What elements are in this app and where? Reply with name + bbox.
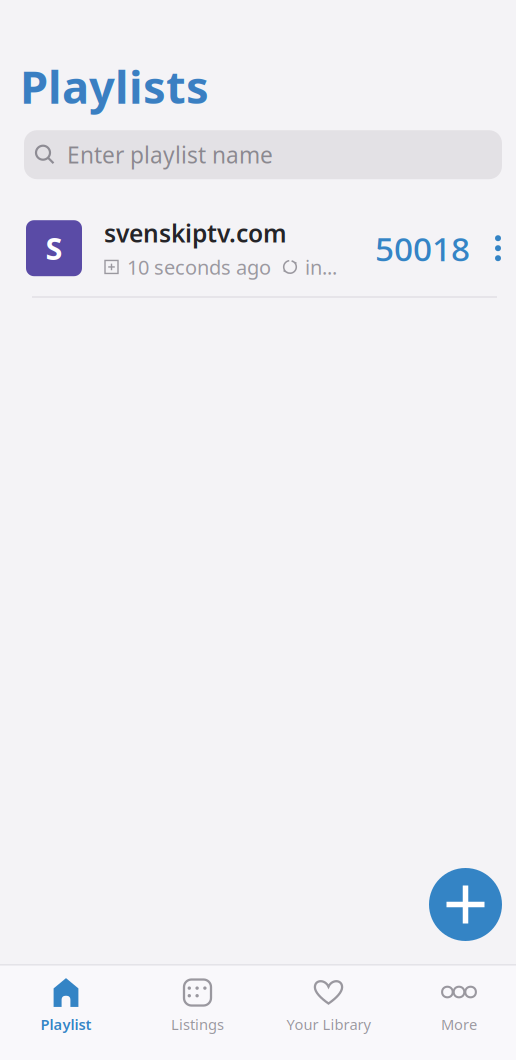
- button[interactable]: More: [387, 965, 516, 1060]
- staticText: in...: [305, 254, 337, 280]
- button[interactable]: Listings: [129, 965, 258, 1060]
- staticText: svenskiptv.com: [104, 216, 287, 250]
- staticText: Listings: [171, 1014, 224, 1034]
- button[interactable]: Enter playlist name: [24, 130, 502, 179]
- staticText: Playlist: [40, 1014, 91, 1034]
- button[interactable]: Add playlist: [429, 868, 502, 941]
- staticText: S: [45, 227, 62, 269]
- staticText: More: [441, 1014, 477, 1034]
- button[interactable]: More options: [470, 200, 516, 296]
- staticText: 10 seconds ago: [127, 254, 271, 280]
- staticText: Playlists: [20, 56, 209, 116]
- staticText: 50018: [375, 226, 470, 270]
- staticText: Enter playlist name: [67, 140, 273, 170]
- button[interactable]: Playlist: [0, 965, 129, 1060]
- button[interactable]: S: [0, 200, 470, 296]
- button[interactable]: Your Library: [258, 965, 387, 1060]
- staticText: Your Library: [286, 1014, 370, 1034]
